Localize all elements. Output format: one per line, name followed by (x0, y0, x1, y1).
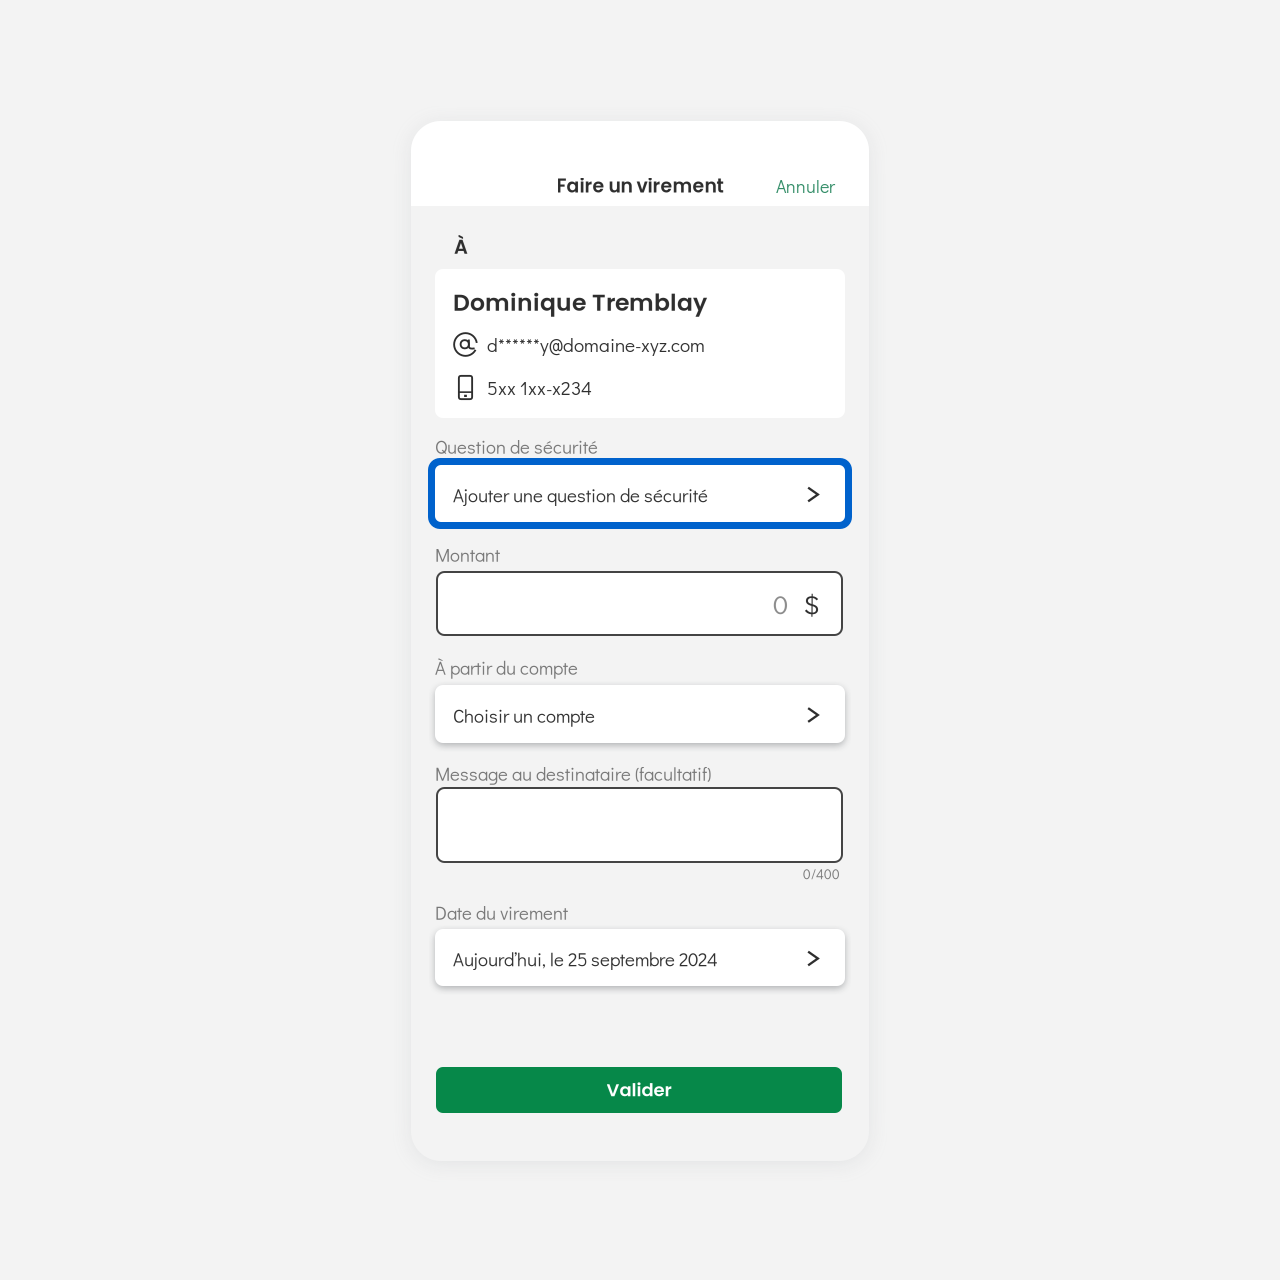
staticText: Faire un virement (556, 173, 723, 199)
staticText: d******y@domaine-xyz.com (487, 332, 705, 357)
staticText: À partir du compte (435, 655, 578, 680)
staticText: Annuler (776, 174, 835, 198)
staticText: 5xx 1xx-x234 (487, 375, 592, 400)
staticText: Date du virement (435, 900, 568, 925)
staticText: Choisir un compte (453, 703, 595, 728)
staticText: Valider (606, 1077, 671, 1103)
staticText: 0/400 (803, 865, 840, 883)
staticText: Aujourd’hui, le 25 septembre 2024 (453, 947, 718, 971)
staticText: Question de sécurité (435, 434, 598, 459)
staticText: Message au destinataire (facultatif) (435, 761, 711, 786)
button[interactable]: Annuler (745, 168, 841, 204)
button[interactable]: Choisir un compte (435, 685, 845, 743)
button[interactable]: Valider (436, 1067, 842, 1113)
staticText: 0 (773, 586, 788, 621)
staticText: Dominique Tremblay (453, 286, 707, 319)
staticText: Ajouter une question de sécurité (453, 483, 708, 507)
staticText: À (454, 233, 468, 261)
button[interactable]: Ajouter une question de sécurité (428, 458, 852, 529)
staticText: $ (803, 586, 819, 621)
button[interactable]: Aujourd’hui, le 25 septembre 2024 (435, 929, 845, 986)
staticText: Montant (435, 542, 500, 567)
